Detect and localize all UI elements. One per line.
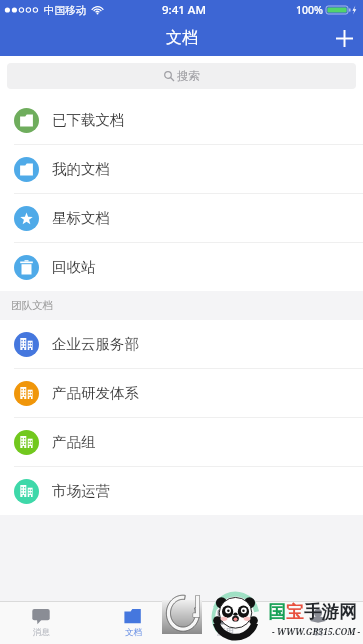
button[interactable]: 企业云服务部 (0, 320, 363, 368)
button[interactable]: 应用 (179, 602, 271, 644)
button[interactable]: 文档 (87, 602, 179, 644)
button[interactable]: 我的文档 (0, 145, 363, 193)
staticText: 团队文档 (11, 299, 53, 312)
staticText: 100% (296, 3, 323, 17)
button[interactable]: 产品组 (0, 418, 363, 466)
button[interactable]: 星标文档 (0, 194, 363, 242)
staticText: 宝 (286, 601, 304, 623)
button[interactable]: 消息 (0, 602, 87, 644)
button[interactable]: 我 (272, 602, 363, 644)
staticText: 产品研发体系 (52, 384, 139, 402)
staticText: 应用 (217, 627, 234, 638)
staticText: 企业云服务部 (52, 335, 139, 353)
staticText: - WWW.GB315.COM - (272, 626, 361, 638)
staticText: 消息 (33, 627, 50, 638)
button[interactable]: 搜索 (7, 63, 356, 89)
staticText: 市场运营 (52, 482, 110, 500)
button[interactable]: 产品研发体系 (0, 369, 363, 417)
staticText: 9:41 AM (162, 2, 206, 18)
staticText: 文档 (166, 28, 198, 48)
staticText: 国 (268, 601, 286, 623)
staticText: 文档 (125, 627, 142, 638)
staticText: 我的文档 (52, 160, 110, 178)
staticText: 回收站 (52, 258, 96, 276)
button[interactable]: 回收站 (0, 243, 363, 291)
staticText: 搜索 (177, 69, 200, 83)
button[interactable]: 市场运营 (0, 467, 363, 515)
staticText: 产品组 (52, 433, 96, 451)
staticText: 手游网 (304, 601, 357, 623)
staticText: 已下载文档 (52, 111, 125, 129)
button[interactable]: 已下载文档 (0, 96, 363, 144)
staticText: 中国移动 (44, 4, 86, 17)
staticText: 我 (314, 627, 323, 638)
button[interactable]: Add (325, 20, 363, 56)
staticText: 星标文档 (52, 209, 110, 227)
